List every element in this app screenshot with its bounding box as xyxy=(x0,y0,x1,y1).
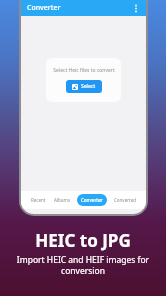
staticText: Select xyxy=(81,83,96,90)
staticText: HEIC to JPG xyxy=(35,229,131,252)
button[interactable]: Albums xyxy=(53,194,71,206)
staticText: Albums xyxy=(54,197,70,203)
button[interactable]: Recent xyxy=(30,194,47,206)
button[interactable]: More options xyxy=(130,2,142,14)
staticText: Converter xyxy=(81,197,103,203)
staticText: Select Heic files to convert xyxy=(53,67,115,74)
staticText: Converted xyxy=(114,197,136,203)
staticText: Import HEIC and HEIF images for conversi… xyxy=(6,254,160,276)
button[interactable]: Select xyxy=(66,80,102,93)
button[interactable]: Converter xyxy=(77,194,107,206)
staticText: Converter xyxy=(27,3,61,13)
button[interactable]: Converted xyxy=(113,194,137,206)
staticText: Recent xyxy=(31,197,46,203)
